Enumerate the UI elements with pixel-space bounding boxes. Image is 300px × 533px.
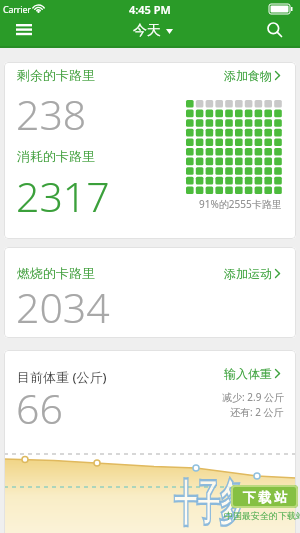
staticText: 添加食物 — [224, 68, 272, 83]
staticText: 还有: 2 公斤 — [230, 405, 284, 419]
staticText: 十子多 — [174, 474, 242, 533]
button[interactable]: 燃烧的卡路里 — [17, 265, 95, 281]
staticText: Carrier — [3, 3, 31, 15]
staticText: 消耗的卡路里 — [17, 148, 95, 164]
staticText: 添加运动 — [224, 266, 272, 281]
staticText: 238 — [16, 86, 87, 142]
staticText: 目前体重 (公斤) — [17, 368, 107, 386]
staticText: 66 — [16, 380, 63, 436]
staticText: 今天 — [133, 22, 161, 40]
staticText: 91%的2555卡路里 — [199, 197, 282, 211]
staticText: 燃烧的卡路里 — [17, 265, 95, 281]
button[interactable] — [9, 17, 39, 43]
button[interactable]: 输入体重 — [224, 366, 280, 381]
staticText: 中国最安全的下载站 — [224, 510, 300, 521]
staticText: 下载站 — [241, 489, 289, 505]
staticText: 输入体重 — [224, 366, 272, 381]
staticText: 减少: 2.9 公斤 — [222, 390, 284, 404]
button[interactable]: 添加食物 — [224, 68, 280, 83]
staticText: 十子多 — [174, 474, 242, 533]
button[interactable]: 目前体重 (公斤) — [17, 368, 107, 386]
staticText: 4:45 PM — [129, 2, 171, 17]
button[interactable] — [260, 16, 290, 44]
button[interactable]: 今天 — [133, 22, 173, 40]
button[interactable]: 添加运动 — [224, 266, 280, 281]
button[interactable]: 剩余的卡路里 — [17, 67, 95, 83]
staticText: 2034 — [16, 279, 110, 335]
staticText: 2317 — [16, 168, 110, 224]
staticText: 剩余的卡路里 — [17, 67, 95, 83]
